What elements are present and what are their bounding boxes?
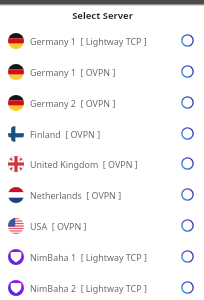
button[interactable]: NimBaha 2 [ Lightway TCP ]	[0, 272, 204, 300]
button[interactable]: USA [ OVPN ]	[0, 210, 204, 241]
button[interactable]: Germany 1 [ OVPN ]	[0, 56, 204, 87]
button[interactable]: Germany 1 [ Lightway TCP ]	[0, 25, 204, 56]
staticText: Germany 1 [ OVPN ]	[30, 66, 116, 78]
staticText: Finland [ OVPN ]	[30, 128, 101, 140]
staticText: Germany 1 [ Lightway TCP ]	[30, 35, 147, 47]
staticText: Germany 2 [ OVPN ]	[30, 97, 116, 109]
other: Select NimBaha 1	[181, 250, 194, 263]
button[interactable]: United Kingdom [ OVPN ]	[0, 148, 204, 179]
button[interactable]: NimBaha 1 [ Lightway TCP ]	[0, 241, 204, 272]
staticText: NimBaha 2 [ Lightway TCP ]	[30, 282, 147, 294]
staticText: NimBaha 1 [ Lightway TCP ]	[30, 251, 147, 263]
staticText: United Kingdom [ OVPN ]	[30, 158, 138, 170]
other: Select United Kingdom	[181, 157, 194, 170]
staticText: USA [ OVPN ]	[30, 220, 87, 232]
other: Select Germany 2	[181, 96, 194, 109]
other: Select Finland	[181, 127, 194, 140]
staticText: Netherlands [ OVPN ]	[30, 189, 122, 201]
other: Select Netherlands	[181, 188, 194, 201]
other: Select USA	[181, 219, 194, 232]
button[interactable]: Germany 2 [ OVPN ]	[0, 87, 204, 118]
button[interactable]: Finland [ OVPN ]	[0, 118, 204, 149]
other: Select Germany 1	[181, 34, 194, 47]
staticText: Select Server	[72, 9, 133, 22]
button[interactable]: Netherlands [ OVPN ]	[0, 179, 204, 210]
other: Select NimBaha 2	[181, 281, 194, 294]
other: Select Germany 1	[181, 65, 194, 78]
